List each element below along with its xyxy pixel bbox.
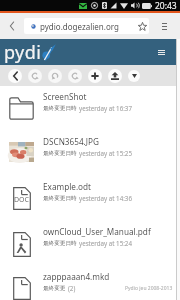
staticText: 最終変更日時 <box>43 195 77 202</box>
button[interactable]: pydio.dogezalien.org <box>24 18 149 34</box>
staticText: DSCN3654.JPG <box>43 136 99 147</box>
staticText: 最終変更日時 <box>43 105 77 112</box>
button[interactable]: ownCloud_User_Manual.pdf <box>0 221 176 266</box>
button[interactable]: Bookmark <box>135 18 149 34</box>
staticText: DOC <box>14 195 30 205</box>
button[interactable]: Refresh <box>68 69 82 83</box>
staticText: zapppaaan4.mkd <box>43 271 110 282</box>
staticText: Example.odt <box>43 181 92 192</box>
button[interactable]: Undo <box>28 69 42 83</box>
button[interactable]: Upload <box>108 69 122 83</box>
button[interactable]: Back <box>0 13 24 39</box>
staticText: 20:43 <box>155 0 177 11</box>
staticText: (2) <box>68 284 76 292</box>
button[interactable]: ScreenShot <box>0 86 176 131</box>
staticText: ownCloud_User_Manual.pdf <box>43 226 151 237</box>
button[interactable]: DOC <box>0 176 176 221</box>
button[interactable]: DSCN3654.JPG <box>0 131 176 176</box>
button[interactable]: Back <box>8 69 22 83</box>
staticText: pydio.dogezalien.org <box>40 21 119 32</box>
staticText: pydi <box>4 40 42 65</box>
staticText: ScreenShot <box>43 91 87 102</box>
button[interactable]: New folder <box>88 69 102 83</box>
button[interactable]: Menu <box>149 13 180 39</box>
staticText: 最終変更 <box>43 285 66 292</box>
button[interactable]: More <box>128 70 140 82</box>
button[interactable]: Menu <box>155 46 167 58</box>
button[interactable]: Redo <box>48 69 62 83</box>
staticText: 最終変更日時 <box>43 150 77 157</box>
staticText: Pydio jeu 2008-2013 <box>125 285 173 292</box>
staticText: yesterday at 16:37 <box>79 104 132 112</box>
button[interactable]: zapppaaan4.mkd <box>0 266 176 300</box>
staticText: yesterday at 14:36 <box>79 194 132 202</box>
staticText: yesterday at 15:24 <box>79 239 132 247</box>
staticText: yesterday at 15:25 <box>79 149 132 157</box>
staticText: 最終変更日時 <box>43 240 77 247</box>
